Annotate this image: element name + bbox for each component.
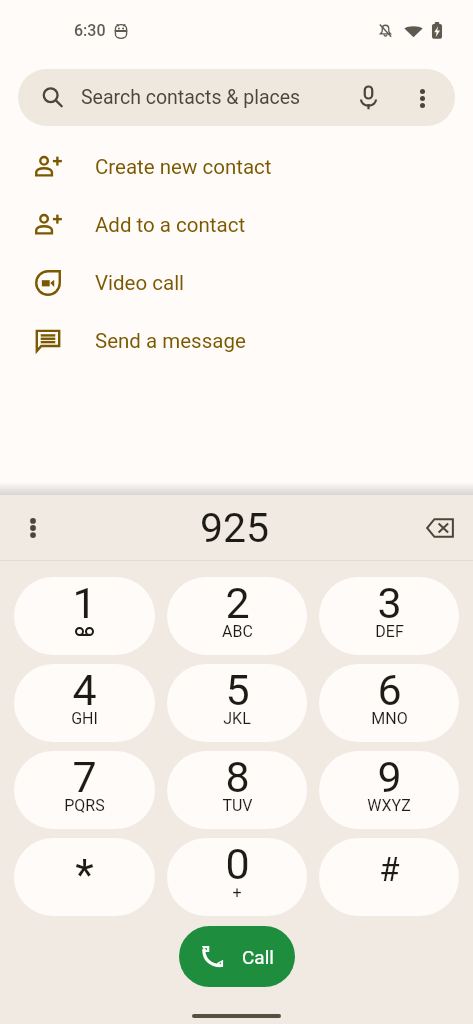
staticText: Search contacts & places [81,86,301,109]
button[interactable]: 7 [14,751,155,829]
button[interactable]: 6 [319,664,459,742]
staticText: 0 [225,839,250,889]
button[interactable]: 1 [14,577,155,655]
button[interactable]: 0 [167,838,307,916]
button[interactable]: Video call [0,254,473,312]
staticText: Add to a contact [95,213,246,237]
staticText: 9 [377,752,402,802]
staticText: DEF [375,622,404,641]
staticText: 3 [377,578,402,628]
staticText: 4 [72,665,97,715]
button[interactable]: Backspace [418,506,462,550]
button[interactable]: 2 [167,577,307,655]
staticText: Send a message [95,329,246,353]
button[interactable]: Voice search [348,78,388,118]
button[interactable]: 4 [14,664,155,742]
staticText: # [379,850,400,889]
button[interactable]: 9 [319,751,459,829]
staticText: ABC [222,622,253,641]
staticText: Video call [95,271,185,295]
button[interactable]: More options [13,508,53,548]
button[interactable]: Send a message [0,312,473,370]
staticText: TUV [222,796,253,815]
button[interactable]: * [14,838,155,916]
staticText: 925 [200,504,270,552]
button[interactable]: # [319,838,459,916]
staticText: WXYZ [367,796,411,815]
staticText: 8 [225,752,250,802]
button[interactable]: Call [179,926,295,987]
staticText: 7 [72,752,97,802]
staticText: GHI [71,709,98,728]
staticText: 1 [72,578,97,628]
button[interactable]: Create new contact [0,138,473,196]
button[interactable]: Search [18,69,455,126]
staticText: Create new contact [95,155,272,179]
button[interactable]: 8 [167,751,307,829]
button[interactable]: More options [402,78,442,118]
other: Search [41,86,64,109]
staticText: 2 [225,578,250,628]
staticText: + [232,883,242,902]
button[interactable]: Add to a contact [0,196,473,254]
staticText: 6:30 [74,21,106,40]
staticText: Call [242,946,274,968]
staticText: 6 [377,665,402,715]
staticText: * [75,849,94,899]
staticText: PQRS [64,796,105,815]
button[interactable]: 5 [167,664,307,742]
staticText: JKL [223,709,251,728]
staticText: MNO [371,709,408,728]
staticText: 5 [225,665,250,715]
button[interactable]: 3 [319,577,459,655]
